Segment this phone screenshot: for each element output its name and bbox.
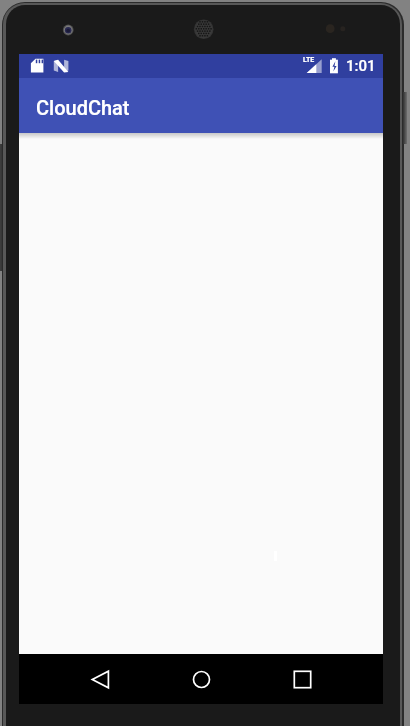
staticText: 1:01: [346, 57, 376, 75]
button[interactable]: Recent apps: [278, 655, 326, 703]
button[interactable]: Home: [177, 655, 225, 703]
button[interactable]: CloudChat: [19, 78, 383, 133]
staticText: LTE: [303, 56, 315, 64]
button[interactable]: Back: [76, 655, 124, 703]
staticText: CloudChat: [36, 96, 130, 119]
